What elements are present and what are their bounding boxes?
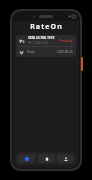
staticText: RateOn	[30, 22, 63, 32]
other: Location	[19, 50, 24, 55]
button[interactable]: Home	[38, 154, 55, 163]
staticText: 2025-08-05	[57, 50, 73, 54]
button[interactable]: Vehicle	[16, 35, 76, 57]
button[interactable]: Rate	[18, 154, 35, 163]
staticText: Pune	[27, 50, 35, 54]
staticText: MH 12 AB 3456	[28, 41, 48, 45]
other: Vehicle	[19, 38, 25, 44]
button[interactable]: Profile	[57, 154, 74, 163]
staticText: TATA ULTRA 1918	[28, 36, 55, 40]
staticText: Pending	[59, 38, 73, 43]
